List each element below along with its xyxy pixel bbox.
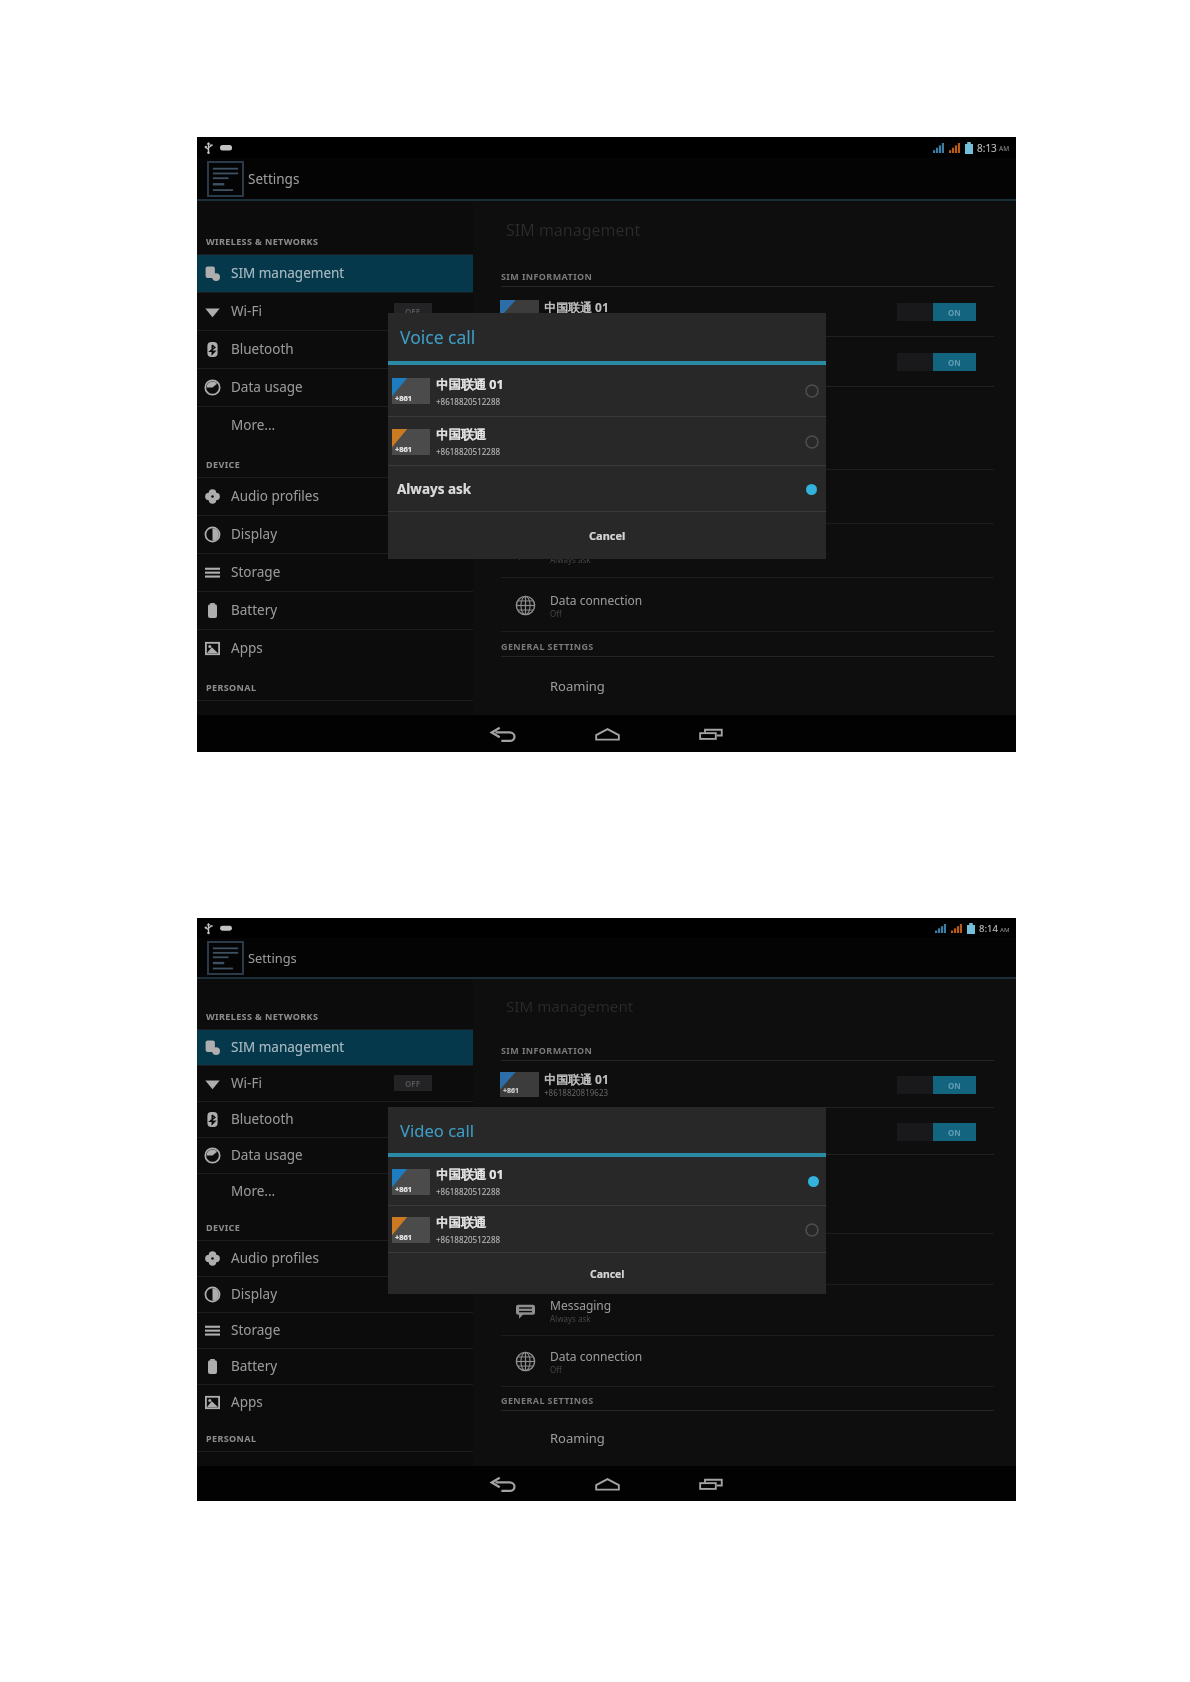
staticText: ON	[948, 307, 961, 318]
staticText: 8:14	[979, 922, 998, 935]
button[interactable]: Display	[197, 1276, 473, 1312]
button[interactable]: Wi-Fi	[197, 1065, 473, 1101]
staticText: Always ask	[550, 554, 591, 565]
staticText: Display	[231, 1285, 278, 1303]
button[interactable]: Video call	[473, 1234, 1016, 1285]
button[interactable]: Bluetooth	[197, 330, 473, 368]
button[interactable]: Home	[587, 720, 627, 748]
staticText: 8:13	[977, 141, 997, 155]
button[interactable]: Apps	[197, 1384, 473, 1420]
staticText: OFF	[405, 306, 421, 317]
button[interactable]: Settings	[197, 938, 311, 977]
staticText: Always ask	[550, 1313, 591, 1324]
staticText: +861	[395, 1232, 413, 1242]
button[interactable]: Storage	[197, 553, 473, 591]
staticText: Wi-Fi	[231, 1074, 262, 1092]
staticText: Data connection	[550, 1348, 643, 1364]
button[interactable]: Voice call	[473, 1183, 1016, 1234]
button[interactable]: Wi-Fi	[197, 292, 473, 330]
staticText: +8618820512288	[436, 396, 501, 407]
button[interactable]: +861	[388, 1157, 826, 1206]
staticText: Bluetooth	[231, 1110, 294, 1128]
staticText: Data connection	[550, 592, 643, 608]
button[interactable]: Roaming	[473, 1411, 1016, 1465]
button[interactable]: +861	[473, 287, 1016, 337]
button[interactable]: Video call	[473, 470, 1016, 524]
button[interactable]: Roaming	[473, 657, 1016, 714]
button[interactable]: Battery	[197, 1348, 473, 1384]
staticText: Voice call	[550, 1195, 602, 1211]
button[interactable]: Bluetooth	[197, 1101, 473, 1137]
staticText: AM	[999, 144, 1010, 153]
button[interactable]: SIM management	[197, 254, 473, 292]
staticText: OFF	[405, 1078, 421, 1089]
staticText: Messaging	[550, 538, 612, 554]
staticText: Data usage	[231, 378, 303, 396]
staticText: GENERAL SETTINGS	[501, 640, 594, 652]
staticText: 中国联通	[544, 349, 592, 364]
button[interactable]: Recent apps	[691, 1470, 731, 1498]
staticText: Bluetooth	[231, 340, 294, 358]
button[interactable]: Home	[587, 1470, 627, 1498]
staticText: DEVICE	[206, 1221, 241, 1233]
staticText: Storage	[231, 563, 281, 581]
button[interactable]: Data connection	[473, 578, 1016, 632]
button[interactable]	[197, 1451, 473, 1466]
staticText: 中国联通 01	[436, 376, 504, 393]
staticText: +861	[395, 1184, 413, 1194]
staticText: 中国联通 01	[436, 1166, 504, 1183]
button[interactable]: Storage	[197, 1312, 473, 1348]
button[interactable]: +861	[473, 1108, 1016, 1155]
button[interactable]: Apps	[197, 629, 473, 667]
button[interactable]: Back	[483, 1470, 523, 1498]
staticText: +861	[395, 393, 413, 403]
button[interactable]: Messaging	[473, 1285, 1016, 1336]
staticText: DEVICE	[206, 458, 241, 470]
staticText: Voice call	[400, 325, 476, 349]
button[interactable]	[197, 700, 473, 715]
staticText: Cancel	[589, 528, 626, 543]
staticText: 中国联通	[436, 1215, 486, 1231]
staticText: Audio profiles	[231, 1249, 319, 1267]
button[interactable]: More...	[197, 1173, 473, 1209]
button[interactable]: +861	[473, 1061, 1016, 1108]
button[interactable]: Battery	[197, 591, 473, 629]
button[interactable]: Voice call	[473, 416, 1016, 470]
button[interactable]: +861	[388, 1206, 826, 1253]
button[interactable]: Audio profiles	[197, 477, 473, 515]
staticText: +861	[503, 364, 520, 374]
button[interactable]: More...	[197, 406, 473, 444]
button[interactable]: Cancel	[388, 1253, 826, 1294]
button[interactable]: Messaging	[473, 524, 1016, 578]
button[interactable]: Back	[483, 720, 523, 748]
staticText: Battery	[231, 1357, 278, 1375]
button[interactable]: Data connection	[473, 1336, 1016, 1387]
staticText: Apps	[231, 639, 263, 657]
button[interactable]: Cancel	[388, 512, 826, 559]
staticText: AM	[1000, 925, 1010, 933]
button[interactable]: +861	[388, 365, 826, 417]
button[interactable]: Always ask	[388, 466, 826, 512]
staticText: Video call	[400, 1119, 474, 1142]
button[interactable]: +861	[473, 337, 1016, 387]
button[interactable]: Audio profiles	[197, 1240, 473, 1276]
staticText: Video call	[550, 1246, 604, 1262]
button[interactable]: Settings	[197, 158, 314, 199]
button[interactable]: Data usage	[197, 368, 473, 406]
staticText: Battery	[231, 601, 278, 619]
button[interactable]: SIM management	[197, 1029, 473, 1065]
button[interactable]: Display	[197, 515, 473, 553]
staticText: PERSONAL	[206, 681, 257, 693]
button[interactable]: +861	[388, 417, 826, 466]
button[interactable]: Data usage	[197, 1137, 473, 1173]
staticText: +861	[395, 444, 413, 454]
staticText: SIM management	[506, 996, 634, 1017]
button[interactable]: Recent apps	[691, 720, 731, 748]
staticText: ON	[948, 357, 961, 368]
